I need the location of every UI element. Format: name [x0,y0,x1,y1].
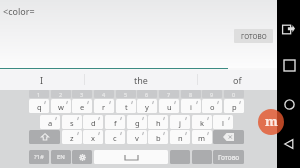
staticText: 1 [37,91,41,98]
button[interactable]: a [40,115,60,129]
button[interactable]: i [181,99,201,113]
button[interactable]: l [213,115,233,129]
staticText: m [265,112,278,130]
button[interactable]: n [170,130,190,144]
button[interactable]: q [29,99,49,113]
staticText: p [232,102,237,112]
button[interactable]: 8 [181,90,201,98]
staticText: q [37,102,42,112]
button[interactable] [213,130,244,144]
staticText: o [210,102,215,112]
button[interactable]: r [94,99,114,113]
staticText: I [40,74,44,86]
button[interactable]: ?1# [29,150,49,164]
button[interactable] [72,150,92,164]
button[interactable]: 3 [72,90,92,98]
staticText: v [135,133,139,143]
button[interactable]: Home [282,97,296,111]
button[interactable]: 7 [159,90,179,98]
button[interactable]: u [159,99,179,113]
button[interactable]: EN [51,150,71,164]
staticText: z [70,133,74,143]
staticText: EN [57,153,65,161]
staticText: n [178,133,183,143]
button[interactable]: v [127,130,147,144]
staticText: Готово [218,153,240,162]
staticText: g [135,118,140,128]
button[interactable]: ГОТОВО [234,29,273,43]
staticText: t [125,102,128,112]
button[interactable]: 0 [224,90,244,98]
staticText: u [167,102,172,112]
staticText: 5 [124,91,128,98]
staticText: k [200,118,205,128]
staticText: of [233,74,242,86]
button[interactable]: 6 [137,90,157,98]
button[interactable]: o [202,99,222,113]
button[interactable]: 5 [116,90,136,98]
button[interactable]: 4 [94,90,114,98]
staticText: 8 [189,91,193,98]
staticText: y [145,102,149,112]
button[interactable]: Recent apps [282,58,296,72]
staticText: h [156,118,161,128]
staticText: f [114,118,117,128]
button[interactable]: x [83,130,103,144]
staticText: ГОТОВО [241,32,267,41]
staticText: e [80,102,85,112]
button[interactable]: s [62,115,82,129]
button[interactable]: I [0,70,84,89]
staticText: 2 [59,91,63,98]
staticText: j [179,118,181,128]
button[interactable]: g [127,115,147,129]
button[interactable]: z [62,130,82,144]
button[interactable]: Готово [213,150,244,164]
button[interactable]: Back [282,137,296,151]
button[interactable]: the [84,70,197,89]
staticText: l [222,118,224,128]
button[interactable]: y [137,99,157,113]
staticText: 3 [80,91,84,98]
button[interactable] [29,130,60,144]
staticText: x [91,133,95,143]
staticText: m [198,133,206,143]
button[interactable]: w [51,99,71,113]
button[interactable]: m [192,130,212,144]
staticText: 4 [102,91,106,98]
staticText: b [156,133,161,143]
button[interactable]: k [192,115,212,129]
button[interactable]: 9 [202,90,222,98]
button[interactable] [94,150,168,164]
staticText: d [91,118,96,128]
button[interactable]: c [105,130,125,144]
button[interactable]: of [197,70,277,89]
staticText: 6 [145,91,149,98]
button[interactable]: p [224,99,244,113]
button[interactable]: d [83,115,103,129]
staticText: w [58,102,64,112]
staticText: 0 [232,91,236,98]
button[interactable]: b [148,130,168,144]
staticText: a [48,118,53,128]
button[interactable]: 2 [51,90,71,98]
staticText: r [102,102,106,112]
button[interactable]: j [170,115,190,129]
staticText: ?1# [34,153,44,161]
button[interactable]: 1 [29,90,49,98]
staticText: 9 [210,91,214,98]
staticText: s [70,118,74,128]
staticText: the [134,74,148,86]
button[interactable]: f [105,115,125,129]
staticText: <color= [3,5,35,17]
button[interactable]: t [116,99,136,113]
staticText: 7 [167,91,171,98]
button[interactable]: e [72,99,92,113]
staticText: i [190,102,192,112]
staticText: c [113,133,117,143]
button[interactable]: Rotate screen [281,22,296,37]
button[interactable]: h [148,115,168,129]
